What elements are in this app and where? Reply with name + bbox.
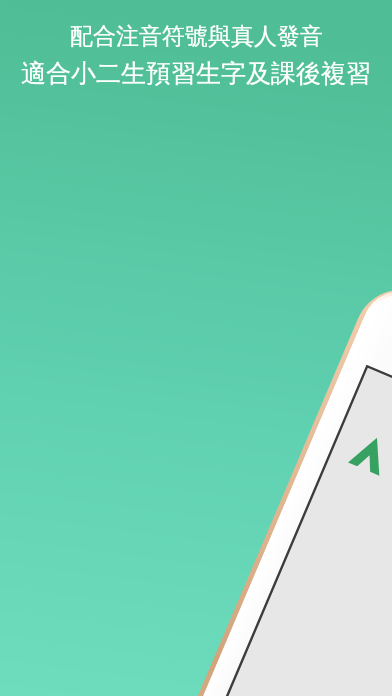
staticText: 適合小二生預習生字及課後複習	[21, 58, 371, 89]
staticText: 配合注音符號與真人發音	[70, 22, 323, 51]
